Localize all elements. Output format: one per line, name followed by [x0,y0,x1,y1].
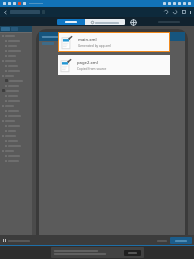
button[interactable]: Save [179,7,188,17]
button[interactable] [0,93,32,98]
button[interactable] [0,128,32,133]
staticText: page2.xml [77,60,98,66]
button[interactable] [0,143,32,148]
button[interactable] [0,158,32,163]
button[interactable] [0,98,32,103]
button[interactable] [0,88,32,93]
button[interactable] [0,48,32,53]
button[interactable] [85,19,125,25]
button[interactable] [124,250,141,256]
button[interactable] [0,103,32,108]
button[interactable] [0,148,32,153]
button[interactable] [0,63,32,68]
staticText: Copied from source [77,67,107,71]
button[interactable] [0,73,32,78]
button[interactable]: Undo [161,7,170,17]
button[interactable] [0,118,32,123]
button[interactable] [0,153,32,158]
button[interactable] [0,38,32,43]
button[interactable] [0,43,32,48]
button[interactable] [0,123,32,128]
button[interactable] [0,108,32,113]
button[interactable]: Back [0,7,10,17]
button[interactable] [0,138,32,143]
staticText: Generated by app.xml [78,44,112,48]
button[interactable] [170,237,192,244]
button[interactable]: More options [188,7,193,17]
button[interactable]: Pause [2,238,7,243]
button[interactable] [0,78,32,83]
button[interactable] [0,58,32,63]
button[interactable] [0,33,32,38]
button[interactable] [0,83,32,88]
button[interactable] [0,53,32,58]
button[interactable] [57,19,85,25]
button[interactable] [0,133,32,138]
button[interactable]: Redo [170,7,179,17]
button[interactable]: Settings [129,18,137,26]
button[interactable]: main.xml [59,33,169,51]
button[interactable]: page2.xml [58,55,170,75]
button[interactable] [0,68,32,73]
button[interactable] [0,113,32,118]
staticText: main.xml [78,37,97,43]
